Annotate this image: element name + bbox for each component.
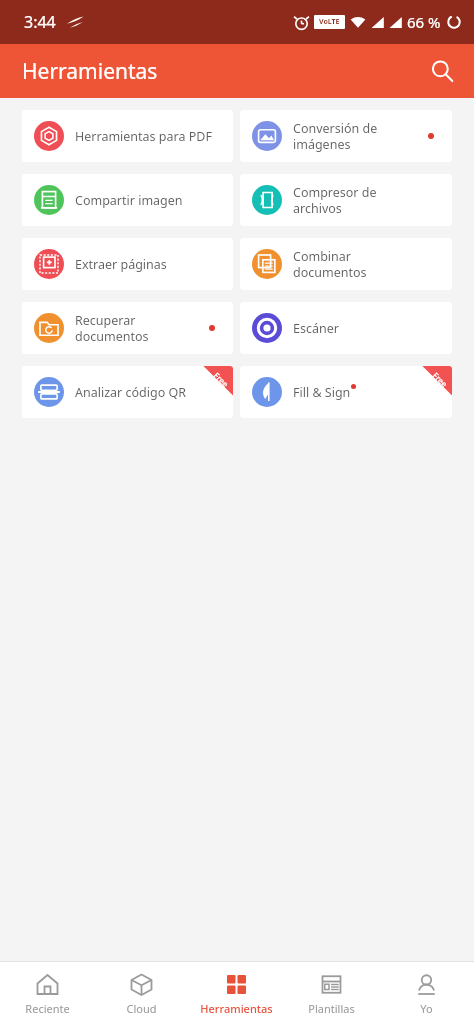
button[interactable]: Cloud <box>94 962 189 1025</box>
button[interactable]: Herramientas para PDF <box>22 110 233 162</box>
staticText: Conversión de imágenes <box>293 120 378 152</box>
staticText: VoLTE <box>319 17 340 27</box>
button[interactable]: Combinar documentos <box>240 238 452 290</box>
staticText: Extraer páginas <box>75 256 167 273</box>
staticText: Yo <box>420 1001 433 1016</box>
staticText: Escáner <box>293 320 339 337</box>
button[interactable]: Yo <box>379 962 474 1025</box>
staticText: 66 % <box>407 12 441 32</box>
staticText: Fill & Sign <box>293 384 351 401</box>
staticText: Cloud <box>126 1001 157 1016</box>
button[interactable]: Fill & Sign <box>240 366 452 418</box>
staticText: 3:44 <box>24 11 56 33</box>
staticText: Plantillas <box>308 1001 355 1016</box>
staticText: Herramientas <box>22 57 158 86</box>
button[interactable]: Analizar código QR <box>22 366 233 418</box>
button[interactable]: Conversión de imágenes <box>240 110 452 162</box>
button[interactable]: Compartir imagen <box>22 174 233 226</box>
staticText: Reciente <box>25 1001 70 1016</box>
staticText: Recuperar documentos <box>75 312 149 344</box>
button[interactable]: Search <box>420 49 464 93</box>
staticText: Free <box>212 370 231 389</box>
staticText: Compartir imagen <box>75 192 183 209</box>
staticText: Herramientas para PDF <box>75 128 212 145</box>
staticText: Free <box>431 370 450 389</box>
button[interactable]: Extraer páginas <box>22 238 233 290</box>
staticText: Compresor de archivos <box>293 184 377 216</box>
staticText: Herramientas <box>200 1001 273 1016</box>
staticText: Combinar documentos <box>293 248 367 280</box>
button[interactable]: Plantillas <box>284 962 379 1025</box>
button[interactable]: Reciente <box>0 962 94 1025</box>
button[interactable]: Escáner <box>240 302 452 354</box>
button[interactable]: Compresor de archivos <box>240 174 452 226</box>
button[interactable]: Herramientas <box>189 962 284 1025</box>
button[interactable]: Recuperar documentos <box>22 302 233 354</box>
staticText: Analizar código QR <box>75 384 186 401</box>
